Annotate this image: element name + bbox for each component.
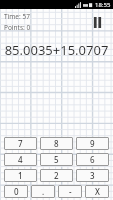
staticText: 18:55 xyxy=(95,1,111,9)
button[interactable]: - xyxy=(58,185,82,198)
staticText: 0 xyxy=(14,186,19,197)
button[interactable]: 6 xyxy=(76,153,109,166)
staticText: 4 xyxy=(18,154,23,165)
staticText: 6 xyxy=(90,154,95,165)
button[interactable]: 7 xyxy=(4,137,37,150)
staticText: X xyxy=(95,186,100,197)
staticText: 7 xyxy=(18,138,23,149)
staticText: 85.0035+15.0707= xyxy=(2,41,111,59)
staticText: Time: 57 xyxy=(4,12,30,21)
staticText: . xyxy=(42,186,45,197)
staticText: Points: 0 xyxy=(4,23,31,32)
button[interactable]: 3 xyxy=(76,169,109,182)
staticText: 2 xyxy=(54,170,59,181)
staticText: 1 xyxy=(18,170,23,181)
staticText: 9 xyxy=(90,138,95,149)
button[interactable]: 4 xyxy=(4,153,37,166)
button[interactable]: Pause xyxy=(87,12,107,32)
button[interactable]: 9 xyxy=(76,137,109,150)
staticText: 3 xyxy=(90,170,95,181)
button[interactable]: X xyxy=(85,185,109,198)
button[interactable]: 5 xyxy=(40,153,73,166)
staticText: 5 xyxy=(54,154,59,165)
button[interactable]: 2 xyxy=(40,169,73,182)
staticText: - xyxy=(69,186,72,197)
button[interactable]: 8 xyxy=(40,137,73,150)
button[interactable]: . xyxy=(31,185,55,198)
button[interactable]: 0 xyxy=(4,185,28,198)
staticText: 8 xyxy=(54,138,59,149)
button[interactable]: 1 xyxy=(4,169,37,182)
